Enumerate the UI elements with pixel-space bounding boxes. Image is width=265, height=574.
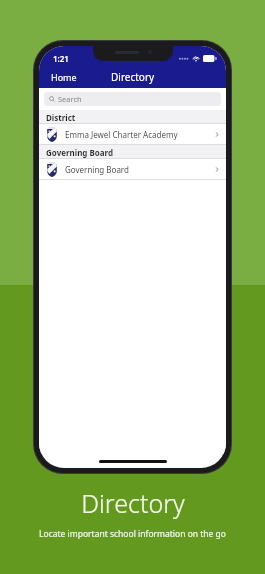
- button[interactable]: Search: [44, 92, 221, 106]
- staticText: District: [46, 112, 76, 123]
- button[interactable]: Emma Jewel Charter Academy: [39, 124, 226, 145]
- staticText: Governing Board: [46, 147, 114, 158]
- staticText: Search: [58, 94, 82, 104]
- staticText: Governing Board: [65, 164, 129, 175]
- staticText: Home: [51, 71, 77, 83]
- staticText: Emma Jewel Charter Academy: [65, 129, 178, 140]
- staticText: Locate important school information on t…: [39, 528, 226, 540]
- button[interactable]: Home: [39, 68, 89, 86]
- button[interactable]: Governing Board: [39, 159, 226, 180]
- staticText: Directory: [111, 70, 155, 84]
- staticText: Directory: [81, 486, 185, 520]
- staticText: 1:21: [53, 53, 69, 64]
